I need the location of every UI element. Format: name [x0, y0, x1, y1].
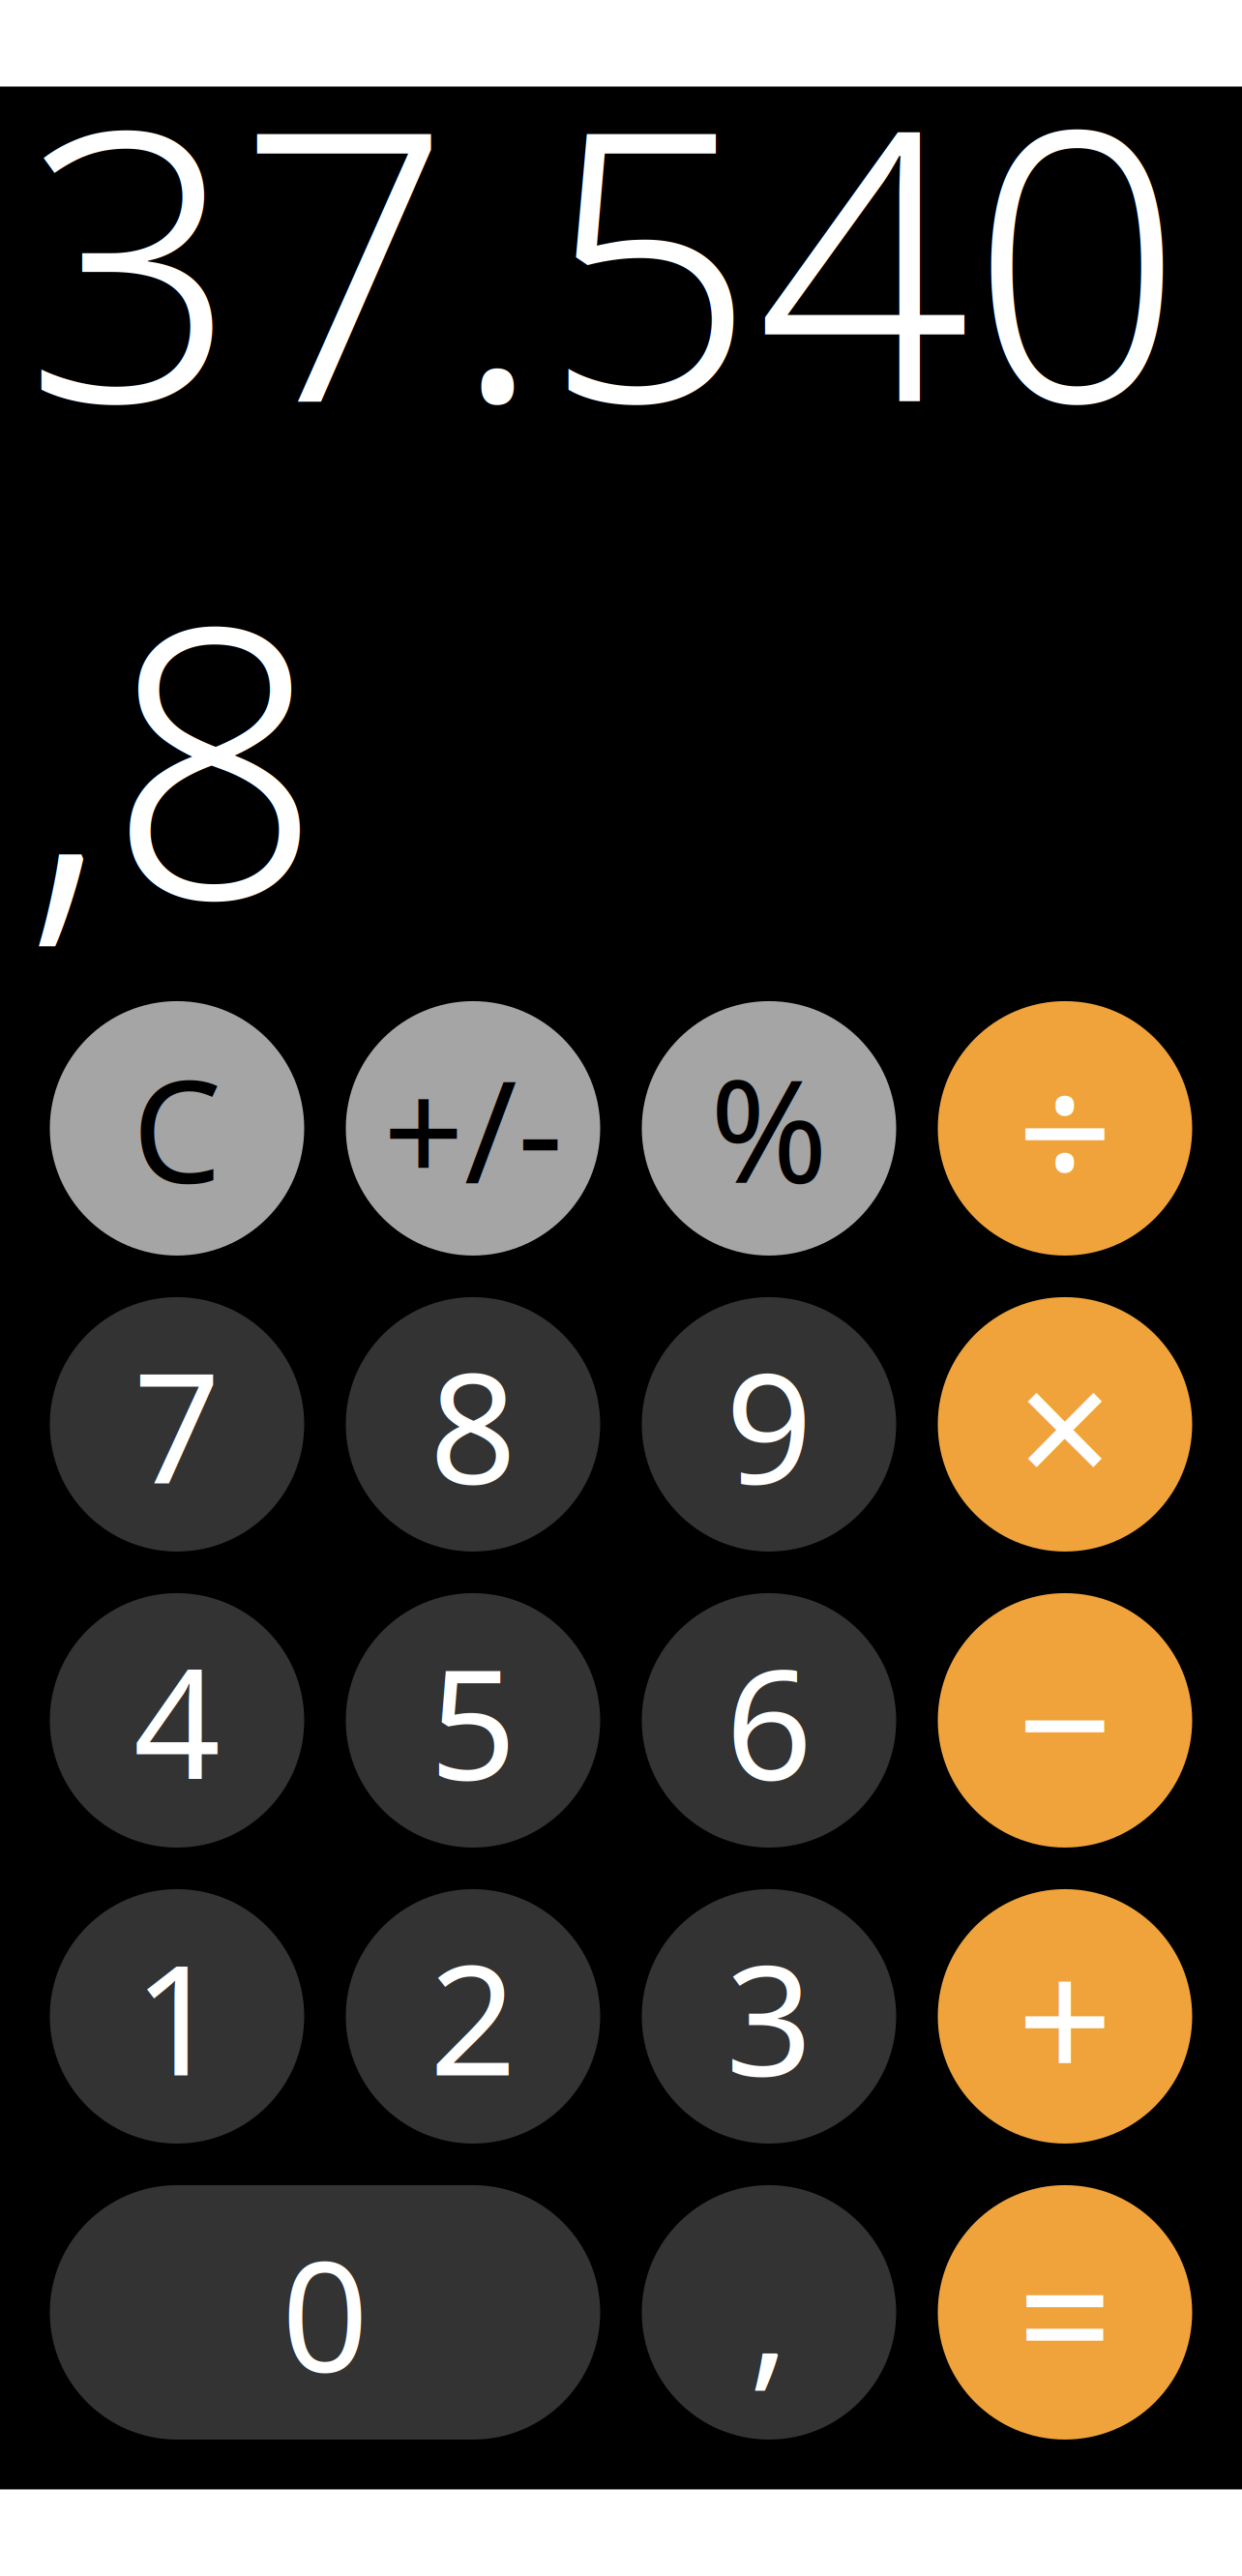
button[interactable]: ,	[642, 2185, 896, 2440]
button[interactable]: 4	[50, 1593, 304, 1848]
staticText: 37.540,8	[24, 8, 1184, 1001]
button[interactable]: 2	[346, 1889, 600, 2144]
button[interactable]: 0	[50, 2185, 600, 2440]
staticText: 7	[133, 1323, 221, 1525]
staticText: 6	[725, 1619, 813, 1821]
button[interactable]: ×	[938, 1297, 1192, 1552]
button[interactable]: 5	[346, 1593, 600, 1848]
button[interactable]: 6	[642, 1593, 896, 1848]
staticText: 2	[429, 1915, 517, 2117]
staticText: =	[1017, 2201, 1113, 2424]
button[interactable]: +/-	[346, 1001, 600, 1255]
button[interactable]: 3	[642, 1889, 896, 2144]
button[interactable]: −	[938, 1593, 1192, 1848]
staticText: 4	[133, 1619, 221, 1821]
staticText: +/-	[383, 1034, 563, 1223]
staticText: ,	[749, 2211, 789, 2413]
button[interactable]: 9	[642, 1297, 896, 1552]
button[interactable]: 8	[346, 1297, 600, 1552]
staticText: %	[710, 1034, 828, 1223]
staticText: ÷	[1017, 1017, 1113, 1240]
button[interactable]: +	[938, 1889, 1192, 2144]
staticText: 3	[725, 1915, 813, 2117]
staticText: 5	[429, 1619, 517, 1821]
staticText: 8	[429, 1323, 517, 1525]
staticText: 1	[133, 1915, 221, 2117]
staticText: 0	[281, 2211, 369, 2413]
button[interactable]: 7	[50, 1297, 304, 1552]
staticText: +	[1017, 1905, 1113, 2128]
staticText: C	[132, 1034, 222, 1223]
button[interactable]: =	[938, 2185, 1192, 2440]
button[interactable]: ÷	[938, 1001, 1192, 1255]
staticText: −	[1017, 1609, 1113, 1832]
button[interactable]: C	[50, 1001, 304, 1255]
staticText: ×	[1017, 1313, 1113, 1536]
button[interactable]: %	[642, 1001, 896, 1255]
staticText: 9	[725, 1323, 813, 1525]
button[interactable]: 1	[50, 1889, 304, 2144]
